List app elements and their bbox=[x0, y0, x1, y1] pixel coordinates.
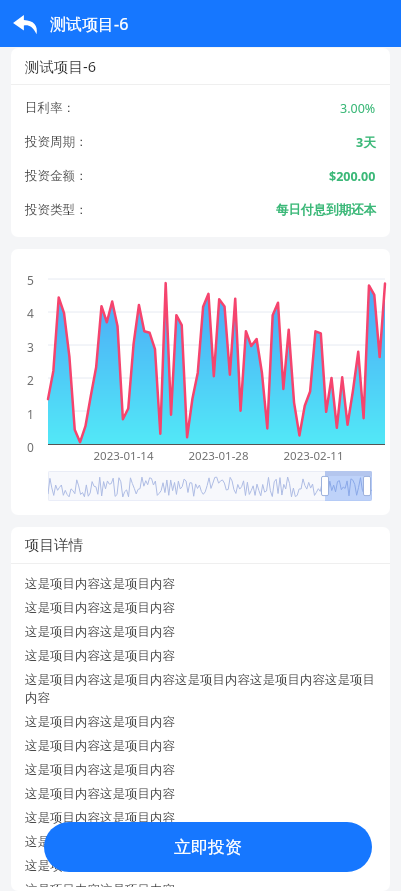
staticText: 这是项目内容这是项目内容 bbox=[25, 882, 376, 887]
staticText: 这是项目内容这是项目内容 bbox=[25, 624, 376, 640]
staticText: 这是项目内容这是项目内容 bbox=[25, 738, 376, 754]
staticText: $200.00 bbox=[329, 168, 376, 185]
staticText: 2023-01-14 bbox=[93, 448, 154, 464]
staticText: 2023-01-28 bbox=[188, 448, 249, 464]
staticText: 5 bbox=[27, 272, 34, 288]
staticText: 这是项目内容这是项目内容 bbox=[25, 762, 376, 778]
staticText: 每日付息到期还本 bbox=[276, 202, 376, 218]
staticText: 测试项目-6 bbox=[50, 13, 129, 35]
staticText: 这是项目内容这是项目内容 bbox=[25, 786, 376, 802]
staticText: 2023-02-11 bbox=[283, 448, 344, 464]
staticText: 3 bbox=[27, 339, 34, 355]
staticText: 这是项目内容这是项目内容 bbox=[25, 576, 376, 592]
staticText: 测试项目-6 bbox=[25, 56, 96, 76]
staticText: 0 bbox=[27, 439, 34, 455]
button[interactable]: Back bbox=[4, 3, 46, 45]
staticText: 4 bbox=[27, 305, 34, 321]
staticText: 这是项目内容这是项目内容 bbox=[25, 834, 376, 850]
staticText: 2 bbox=[27, 372, 34, 388]
staticText: 这是项目内容这是项目内容 bbox=[25, 858, 376, 874]
staticText: 这是项目内容这是项目内容 bbox=[25, 714, 376, 730]
staticText: 项目详情 bbox=[25, 536, 83, 554]
staticText: 1 bbox=[27, 406, 34, 422]
staticText: 3天 bbox=[356, 134, 376, 151]
staticText: 投资类型： bbox=[25, 202, 88, 218]
staticText: 投资金额： bbox=[25, 168, 88, 184]
staticText: 这是项目内容这是项目内容 bbox=[25, 600, 376, 616]
staticText: 3.00% bbox=[340, 100, 376, 117]
button[interactable]: Zoom range bbox=[48, 471, 372, 501]
staticText: 立即投资 bbox=[174, 837, 242, 858]
staticText: 投资周期： bbox=[25, 134, 88, 150]
button[interactable]: 立即投资 bbox=[44, 822, 372, 872]
staticText: 这是项目内容这是项目内容 bbox=[25, 648, 376, 664]
staticText: 日利率： bbox=[25, 100, 75, 116]
staticText: 这是项目内容这是项目内容 bbox=[25, 810, 376, 826]
staticText: 这是项目内容这是项目内容这是项目内容这是项目内容这是项目内容 bbox=[25, 672, 376, 706]
